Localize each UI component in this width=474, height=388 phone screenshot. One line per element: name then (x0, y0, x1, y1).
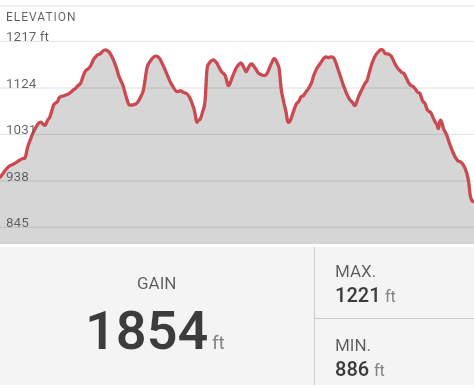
staticText: MIN. (335, 335, 372, 355)
staticText: GAIN (137, 273, 177, 293)
staticText: ft (374, 361, 385, 380)
staticText: ft (212, 331, 225, 353)
staticText: ELEVATION (6, 10, 77, 24)
staticText: 1221 (335, 283, 381, 306)
staticText: 1124 (6, 75, 37, 91)
staticText: ft (385, 287, 396, 306)
staticText: 845 (6, 214, 29, 230)
button[interactable]: GAIN (0, 247, 314, 385)
staticText: 1217 ft (6, 28, 49, 44)
staticText: 938 (6, 168, 29, 184)
button[interactable]: MIN. (315, 319, 474, 385)
button[interactable]: MAX. (315, 247, 474, 318)
staticText: 886 (335, 357, 370, 380)
staticText: 1031 (6, 121, 37, 137)
staticText: MAX. (335, 261, 377, 281)
staticText: 1854 (85, 299, 209, 362)
